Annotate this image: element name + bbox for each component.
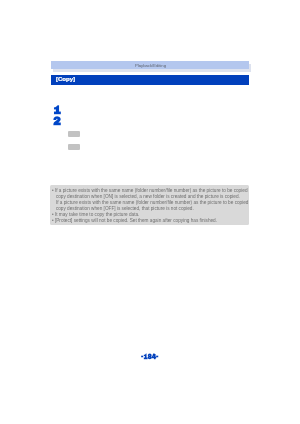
button[interactable]: -184- (134, 351, 166, 362)
staticText: -184- (141, 353, 159, 360)
staticText: 1 (53, 104, 61, 117)
staticText: If a picture exists with the same name (… (52, 200, 249, 205)
button[interactable]: Button graphic (68, 144, 80, 150)
button[interactable]: Button graphic (68, 131, 80, 137)
staticText: [Copy] (56, 76, 75, 83)
staticText: • [Protect] settings will not be copied.… (52, 218, 218, 223)
staticText: 2 (53, 115, 61, 128)
staticText: copy destination when [ON] is selected, … (52, 194, 240, 199)
button[interactable]: Playback/Editing (51, 61, 249, 69)
staticText: copy destination when [OFF] is selected,… (52, 206, 194, 211)
staticText: Playback/Editing (135, 63, 166, 68)
staticText: • It may take time to copy the picture d… (52, 212, 140, 217)
staticText: • If a picture exists with the same name… (52, 188, 249, 193)
button[interactable]: [Copy] (51, 75, 249, 85)
